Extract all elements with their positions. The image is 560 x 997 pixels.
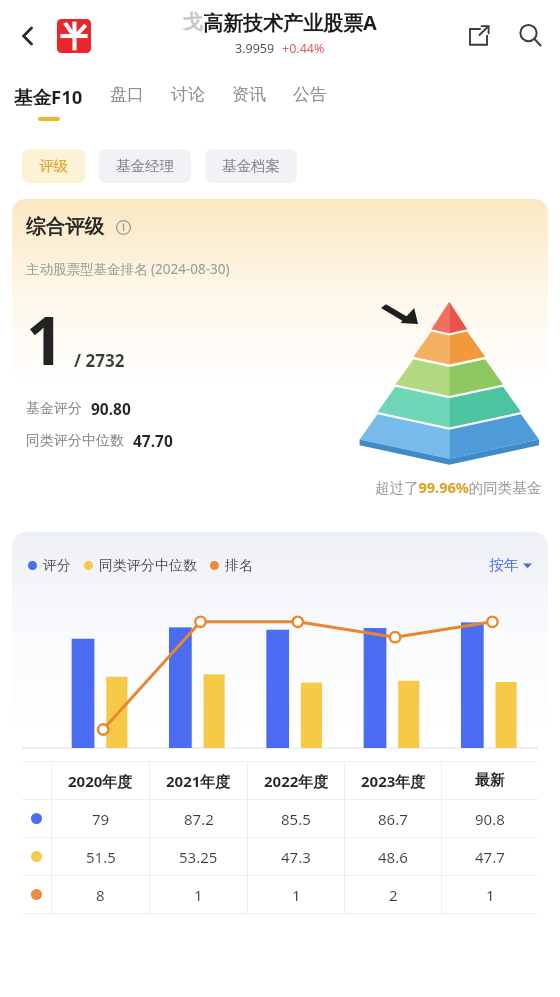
button[interactable]: 基金档案 xyxy=(205,149,297,183)
staticText: 3.9959 xyxy=(235,40,275,57)
button[interactable]: 讨论 xyxy=(171,84,205,113)
staticText: 90.8 xyxy=(475,809,505,829)
button[interactable]: Info xyxy=(112,216,134,238)
staticText: +0.44% xyxy=(282,40,325,57)
button[interactable]: Back xyxy=(6,14,50,58)
button[interactable]: 按年 xyxy=(489,556,532,575)
staticText: 1 xyxy=(26,294,64,384)
button[interactable]: 基金F10 xyxy=(14,84,83,121)
staticText: / 2732 xyxy=(74,349,125,372)
staticText: 最新 xyxy=(475,771,505,790)
button[interactable]: 盘口 xyxy=(110,84,144,113)
button[interactable]: Fund logo xyxy=(55,17,93,55)
staticText: 1 xyxy=(486,885,495,905)
button[interactable]: 资讯 xyxy=(232,84,266,113)
staticText: 2021年度 xyxy=(166,771,231,791)
staticText: 资讯 xyxy=(232,84,266,105)
staticText: 同类评分中位数 xyxy=(99,557,197,575)
staticText: 基金评分 xyxy=(26,400,82,418)
staticText: 基金F10 xyxy=(14,84,83,109)
staticText: 85.5 xyxy=(281,809,311,829)
staticText: 基金经理 xyxy=(116,157,174,175)
staticText: 高新技术产业股票A xyxy=(203,9,377,36)
staticText: 评级 xyxy=(39,157,68,175)
staticText: 按年 xyxy=(489,556,519,575)
button[interactable]: Search xyxy=(508,13,552,57)
staticText: 2 xyxy=(389,885,398,905)
button[interactable]: Share xyxy=(456,13,500,57)
staticText: 90.80 xyxy=(91,398,131,419)
button[interactable]: 评级 xyxy=(22,149,85,183)
staticText: 51.5 xyxy=(86,847,116,867)
button[interactable]: 基金经理 xyxy=(99,149,191,183)
staticText: 1 xyxy=(194,885,203,905)
staticText: 讨论 xyxy=(171,84,205,105)
staticText: 公告 xyxy=(293,84,327,105)
button[interactable]: 公告 xyxy=(293,84,327,113)
button[interactable]: 评分 xyxy=(12,532,548,932)
staticText: 同类评分中位数 xyxy=(26,432,124,450)
staticText: 47.3 xyxy=(281,847,311,867)
staticText: 排名 xyxy=(225,557,253,575)
staticText: 47.7 xyxy=(475,847,505,867)
button[interactable]: 综合评级 xyxy=(12,199,548,519)
staticText: 48.6 xyxy=(378,847,408,867)
staticText: 盘口 xyxy=(110,84,144,105)
staticText: 79 xyxy=(92,809,110,829)
staticText: 2020年度 xyxy=(68,771,133,791)
staticText: 主动股票型基金排名 (2024-08-30) xyxy=(26,260,230,278)
staticText: 评分 xyxy=(43,557,71,575)
staticText: 86.7 xyxy=(378,809,408,829)
staticText: 2022年度 xyxy=(264,771,329,791)
staticText: 47.70 xyxy=(133,430,173,451)
staticText: 超过了99.96%的同类基金 xyxy=(375,477,542,497)
staticText: 戈 xyxy=(183,10,203,35)
staticText: 综合评级 xyxy=(26,214,104,239)
staticText: 8 xyxy=(96,885,105,905)
staticText: 2023年度 xyxy=(361,771,426,791)
staticText: 基金档案 xyxy=(222,157,280,175)
staticText: 87.2 xyxy=(184,809,214,829)
staticText: 53.25 xyxy=(179,847,218,867)
staticText: 1 xyxy=(292,885,301,905)
